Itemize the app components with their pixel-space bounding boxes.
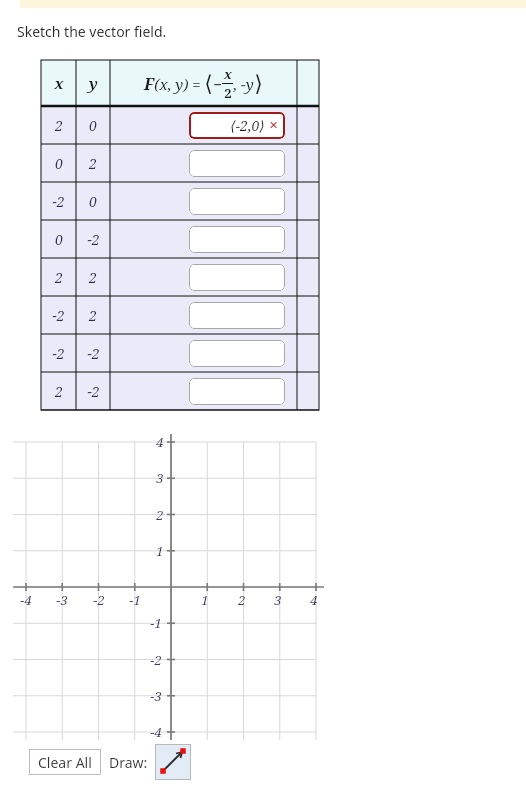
button[interactable] [189, 188, 285, 215]
staticText: -2 [150, 651, 162, 669]
staticText: 0 [55, 154, 63, 173]
staticText: , −y [233, 74, 254, 94]
staticText: -3 [150, 687, 162, 705]
staticText: F [144, 73, 154, 95]
staticText: 1 [156, 542, 164, 560]
staticText: -4 [20, 591, 32, 609]
button[interactable] [189, 264, 285, 291]
staticText: 0 [55, 230, 63, 249]
staticText: (x, y) = [154, 74, 201, 94]
staticText: -3 [56, 591, 68, 609]
staticText: -2 [52, 344, 65, 363]
button[interactable]: ⟨−2,0⟩ [189, 112, 285, 139]
staticText: -1 [129, 591, 141, 609]
staticText: -4 [150, 723, 162, 741]
staticText: 0 [89, 116, 97, 135]
staticText: -2 [93, 591, 105, 609]
button[interactable] [189, 302, 285, 329]
staticText: 4 [310, 591, 318, 609]
staticText: 2 [224, 84, 232, 102]
staticText: 2 [89, 268, 97, 287]
button[interactable] [189, 340, 285, 367]
staticText: 2 [89, 154, 97, 173]
staticText: 2 [89, 306, 97, 325]
staticText: 2 [55, 116, 63, 135]
staticText: ⟨−2,0⟩ [230, 116, 265, 135]
staticText: 2 [55, 268, 63, 287]
staticText: 2 [156, 506, 164, 524]
staticText: y [89, 73, 98, 93]
staticText: 4 [156, 433, 164, 451]
staticText: -2 [52, 306, 65, 325]
staticText: -1 [150, 614, 162, 632]
staticText: Draw: [109, 753, 148, 772]
staticText: − [213, 74, 222, 94]
staticText: Clear All [38, 753, 92, 772]
staticText: ⟨ [204, 71, 213, 97]
button[interactable]: Draw vector [155, 744, 191, 780]
staticText: -2 [52, 192, 65, 211]
staticText: 3 [274, 591, 282, 609]
staticText: x [54, 73, 64, 93]
staticText: -2 [87, 230, 100, 249]
staticText: 0 [89, 192, 97, 211]
staticText: 1 [201, 591, 209, 609]
staticText: 3 [156, 469, 164, 487]
staticText: -2 [87, 344, 100, 363]
staticText: Sketch the vector field. [17, 22, 167, 41]
staticText: 2 [55, 382, 63, 401]
staticText: ✕ [269, 119, 279, 132]
button[interactable] [189, 378, 285, 405]
staticText: 2 [238, 591, 246, 609]
button[interactable]: Clear All [29, 749, 101, 775]
staticText: -2 [87, 382, 100, 401]
staticText: x [224, 65, 232, 83]
staticText: ⟩ [254, 71, 263, 97]
button[interactable] [189, 226, 285, 253]
button[interactable] [189, 150, 285, 177]
